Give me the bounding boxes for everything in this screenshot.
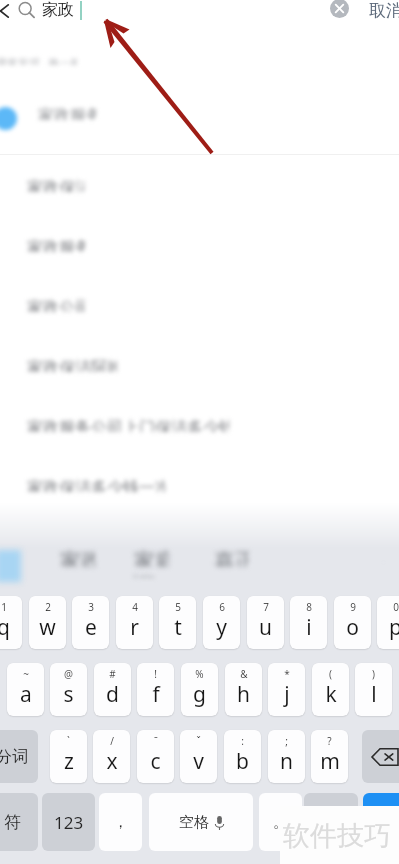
staticText: j <box>284 680 290 709</box>
staticText: a <box>20 680 32 709</box>
staticText: 。 <box>273 813 288 832</box>
button[interactable]: 符 <box>0 793 38 851</box>
staticText: 3 <box>88 600 94 614</box>
button[interactable]: & <box>225 663 262 716</box>
button[interactable]: Search <box>363 793 399 851</box>
button[interactable] <box>304 793 358 851</box>
staticText: y <box>216 613 227 642</box>
staticText: ) <box>372 667 375 681</box>
button[interactable]: 分词 <box>0 730 38 783</box>
staticText: t <box>174 613 182 642</box>
button[interactable]: 。 <box>259 793 302 851</box>
staticText: e <box>85 613 97 642</box>
staticText: m <box>320 747 340 776</box>
staticText: 1 <box>1 600 7 614</box>
button[interactable]: 123 <box>42 793 95 851</box>
staticText: ~ <box>23 667 29 681</box>
button[interactable]: 家政服务 <box>0 219 399 279</box>
button[interactable]: 家政服务 <box>0 96 399 148</box>
button[interactable]: 7 <box>247 596 284 649</box>
staticText: 0 <box>393 600 399 614</box>
button[interactable]: 家政保洁多少钱一次 <box>0 459 399 519</box>
button[interactable]: ˇ <box>180 730 217 783</box>
staticText: ! <box>154 667 157 681</box>
staticText: 7 <box>263 600 269 614</box>
button[interactable]: 1 <box>0 596 22 649</box>
button[interactable]: 家政保洁阿姨 <box>0 339 399 399</box>
staticText: 搜索发现 换一换 <box>0 55 82 70</box>
button[interactable]: @ <box>50 663 87 716</box>
button[interactable]: ) <box>355 663 392 716</box>
button[interactable]: 5 <box>159 596 196 649</box>
staticText: 8 <box>306 600 312 614</box>
staticText: 5 <box>175 600 181 614</box>
button[interactable]: 家政保洁 <box>0 159 399 219</box>
staticText: ， <box>113 813 128 832</box>
staticText: c <box>150 747 161 776</box>
button[interactable]: Clear text <box>330 0 349 18</box>
button[interactable]: 3 <box>72 596 109 649</box>
button[interactable]: 2 <box>29 596 66 649</box>
staticText: # <box>109 667 116 681</box>
staticText: 家政保洁 <box>27 178 91 198</box>
button[interactable]: 0 <box>377 596 399 649</box>
staticText: q <box>0 613 10 642</box>
button[interactable]: Backspace <box>362 730 399 783</box>
staticText: ; <box>285 734 288 748</box>
staticText: h <box>237 680 250 709</box>
button[interactable]: 空格 <box>149 793 253 851</box>
staticText: / <box>110 734 114 748</box>
staticText: 符 <box>4 812 21 833</box>
button[interactable]: 9 <box>334 596 371 649</box>
button[interactable]: ! <box>137 663 174 716</box>
button[interactable]: / <box>93 730 130 783</box>
staticText: ? <box>327 734 332 748</box>
button[interactable]: 家政公司 <box>0 279 399 339</box>
staticText: 家政公司 <box>27 298 91 318</box>
staticText: i <box>306 613 312 642</box>
staticText: ( <box>329 667 332 681</box>
button[interactable]: 家政服务公司上门保洁多少钱 <box>0 399 399 459</box>
button[interactable]: ˋ <box>50 730 87 783</box>
staticText: p <box>389 613 399 642</box>
staticText: 家政服务公司上门保洁多少钱 <box>27 418 235 438</box>
staticText: 家政 <box>42 0 74 20</box>
staticText: x <box>106 747 118 776</box>
staticText: & <box>240 667 248 681</box>
button[interactable]: * <box>268 663 305 716</box>
button[interactable]: ~ <box>7 663 44 716</box>
staticText: ˋ <box>67 734 70 748</box>
button[interactable]: 取消 <box>369 0 399 26</box>
staticText: : <box>241 734 244 748</box>
staticText: 嘉正 <box>214 548 256 574</box>
button[interactable]: ˉ <box>137 730 174 783</box>
button[interactable]: ( <box>312 663 349 716</box>
button[interactable]: # <box>94 663 131 716</box>
staticText: s <box>63 680 74 709</box>
staticText: 2 <box>45 600 51 614</box>
staticText: 家政服务 <box>27 238 91 258</box>
staticText: jiating <box>133 571 160 583</box>
button[interactable]: ? <box>311 730 348 783</box>
staticText: 家庭 <box>134 548 176 574</box>
button[interactable]: ; <box>268 730 305 783</box>
staticText: 家政保洁多少钱一次 <box>27 478 171 498</box>
staticText: r <box>130 613 139 642</box>
button[interactable]: 4 <box>116 596 153 649</box>
staticText: v <box>193 747 204 776</box>
staticText: 空格 <box>179 813 209 832</box>
staticText: g <box>193 680 206 709</box>
staticText: 家政 <box>60 548 102 574</box>
staticText: 6 <box>219 600 225 614</box>
button[interactable]: ， <box>99 793 142 851</box>
staticText: d <box>106 680 119 709</box>
staticText: 取消 <box>369 0 399 21</box>
staticText: * <box>284 667 290 681</box>
button[interactable]: % <box>181 663 218 716</box>
button[interactable]: Back <box>0 0 16 23</box>
button[interactable]: 8 <box>290 596 327 649</box>
button[interactable]: 6 <box>203 596 240 649</box>
button[interactable]: : <box>224 730 261 783</box>
staticText: z <box>64 747 74 776</box>
staticText: w <box>39 613 56 642</box>
